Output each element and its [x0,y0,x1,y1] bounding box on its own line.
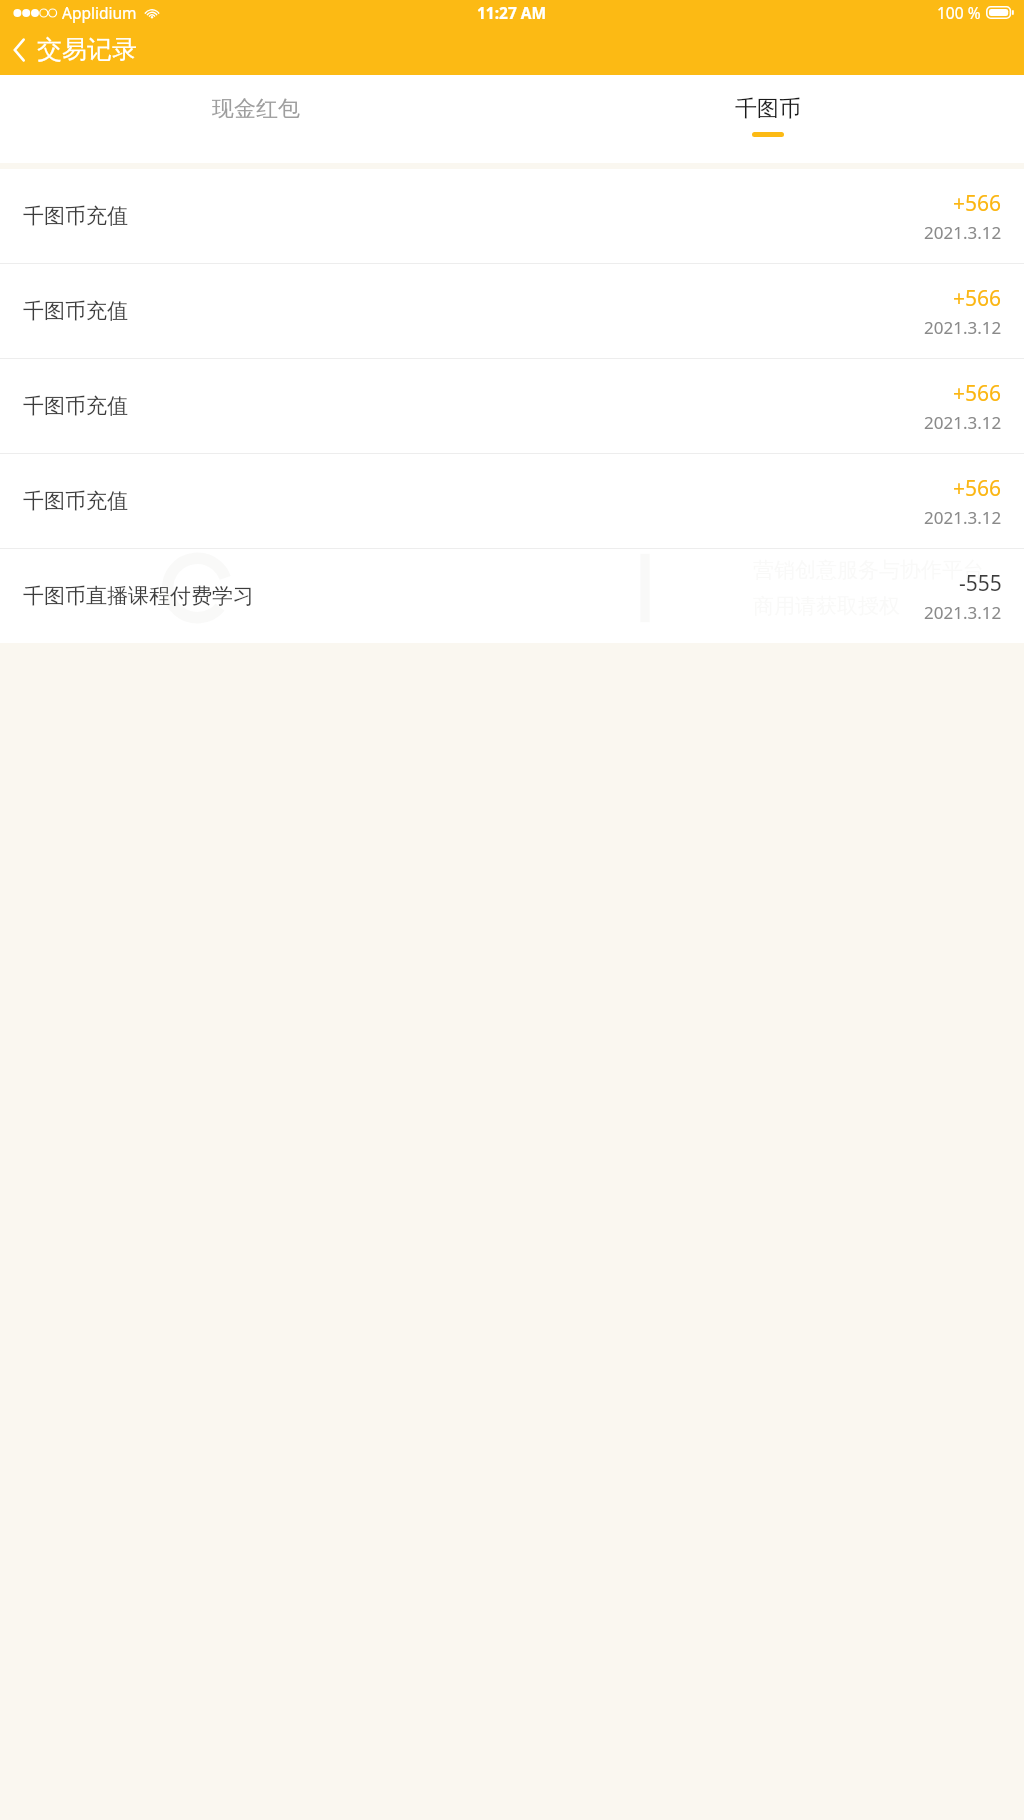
button[interactable]: 千图币充值 [0,264,1024,358]
staticText: +566 [953,379,1002,408]
staticText: 千图币充值 [23,298,128,324]
staticText: +566 [953,474,1002,503]
button[interactable]: 千图币充值 [0,359,1024,453]
staticText: 2021.3.12 [924,601,1002,624]
staticText: 11:27 AM [477,2,547,23]
staticText: 2021.3.12 [924,411,1002,434]
staticText: 营销创意服务与协作平台 [753,557,984,583]
staticText: 2021.3.12 [924,316,1002,339]
staticText: 千图币 [735,95,801,123]
button[interactable]: 现金红包 [0,75,512,137]
button[interactable]: 千图币 [512,75,1024,137]
button[interactable]: 千图币充值 [0,454,1024,548]
staticText: 千图币直播课程付费学习 [23,583,254,609]
staticText: 现金红包 [212,95,300,123]
staticText: 2021.3.12 [924,221,1002,244]
staticText: Applidium [62,2,137,23]
staticText: +566 [953,189,1002,218]
staticText: 交易记录 [37,34,137,65]
staticText: -555 [959,569,1002,598]
button[interactable]: Back [0,28,149,71]
staticText: 2021.3.12 [924,506,1002,529]
staticText: 千图币充值 [23,488,128,514]
staticText: 100 % [937,2,981,23]
button[interactable]: 千图币充值 [0,169,1024,263]
button[interactable]: 千图币直播课程付费学习 [0,549,1024,643]
staticText: +566 [953,284,1002,313]
staticText: 千图币充值 [23,203,128,229]
staticText: 千图币充值 [23,393,128,419]
